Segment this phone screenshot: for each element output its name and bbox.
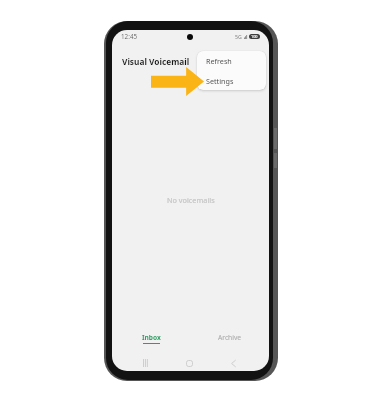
button[interactable]: Home [181,355,197,371]
button[interactable]: Refresh [197,51,266,71]
button[interactable]: Inbox [112,328,190,350]
staticText: Visual Voicemail [122,56,190,67]
staticText: 12:45 [121,32,138,41]
button[interactable]: Archive [190,328,269,350]
staticText: Settings [206,76,234,86]
staticText: Refresh [206,56,232,66]
button[interactable]: Settings [197,71,266,90]
staticText: Archive [218,333,242,342]
staticText: No voicemails [167,195,215,205]
staticText: 5G [235,33,242,40]
button[interactable]: Recents [138,355,154,371]
button[interactable]: Back [225,355,241,371]
staticText: Inbox [142,333,161,342]
staticText: 100 [251,34,258,39]
